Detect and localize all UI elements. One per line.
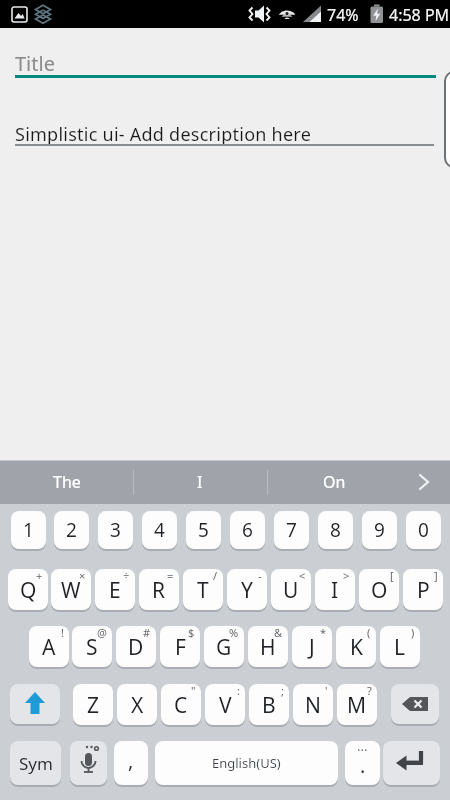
staticText: ? — [367, 683, 372, 698]
staticText: ] — [434, 568, 438, 583]
staticText: N — [305, 691, 321, 720]
staticText: Simplistic ui- Add description here — [15, 122, 312, 147]
staticText: " — [191, 683, 196, 698]
button[interactable]: U — [271, 569, 311, 610]
staticText: > — [343, 568, 350, 583]
button[interactable]: C — [161, 684, 201, 725]
button[interactable]: I — [315, 569, 355, 610]
staticText: = — [167, 568, 174, 583]
staticText: ÷ — [123, 568, 130, 583]
button[interactable] — [383, 741, 440, 785]
button[interactable]: K — [336, 626, 376, 667]
staticText: 7 — [286, 517, 297, 543]
button[interactable] — [70, 741, 107, 785]
button[interactable]: Sym — [10, 741, 61, 785]
button[interactable]: Q — [8, 569, 48, 610]
staticText: I — [331, 576, 339, 605]
staticText: 5 — [198, 517, 209, 543]
staticText: K — [350, 633, 363, 662]
staticText: W — [61, 576, 81, 605]
button[interactable]: 1 — [11, 511, 46, 549]
button[interactable]: ... — [345, 741, 380, 785]
button[interactable]: N — [293, 684, 333, 725]
staticText: $ — [188, 625, 195, 640]
button[interactable]: F — [160, 626, 200, 667]
button[interactable]: D — [116, 626, 156, 667]
staticText: H — [260, 633, 276, 662]
button[interactable]: A — [29, 626, 69, 667]
button[interactable]: English(US) — [155, 741, 338, 785]
button[interactable]: X — [117, 684, 157, 725]
staticText: 4:58 PM — [389, 4, 450, 26]
button[interactable] — [0, 36, 450, 80]
button[interactable]: W — [51, 569, 91, 610]
button[interactable]: 5 — [186, 511, 221, 549]
button[interactable]: P — [403, 569, 443, 610]
button[interactable]: I — [133, 460, 267, 504]
staticText: ) — [411, 625, 415, 640]
button[interactable]: 3 — [98, 511, 133, 549]
staticText: E — [109, 576, 121, 605]
staticText: 74% — [327, 4, 359, 26]
button[interactable]: S — [72, 626, 112, 667]
staticText: 3 — [110, 517, 121, 543]
staticText: C — [174, 691, 188, 720]
button[interactable]: J — [292, 626, 332, 667]
button[interactable]: 9 — [362, 511, 397, 549]
staticText: Sym — [19, 752, 53, 775]
staticText: / — [213, 568, 218, 583]
staticText: G — [216, 633, 232, 662]
button[interactable] — [10, 684, 60, 724]
button[interactable]: 6 — [230, 511, 265, 549]
staticText: - — [258, 568, 262, 583]
staticText: On — [323, 471, 346, 493]
staticText: T — [197, 576, 209, 605]
button[interactable]: B — [249, 684, 289, 725]
button[interactable]: O — [359, 569, 399, 610]
staticText: V — [219, 691, 232, 720]
staticText: 1 — [23, 517, 34, 543]
staticText: ' — [325, 683, 328, 698]
staticText: [ — [390, 568, 394, 583]
staticText: ; — [281, 683, 284, 698]
button[interactable] — [0, 110, 450, 148]
button[interactable]: 0 — [406, 511, 441, 549]
staticText: * — [320, 625, 327, 640]
button[interactable]: Z — [73, 684, 113, 725]
button[interactable]: 4 — [142, 511, 177, 549]
staticText: # — [143, 625, 151, 640]
button[interactable] — [401, 460, 450, 504]
button[interactable]: The — [0, 460, 133, 504]
button[interactable]: H — [248, 626, 288, 667]
staticText: Z — [87, 691, 100, 720]
button[interactable]: Y — [227, 569, 267, 610]
staticText: M — [347, 691, 367, 720]
staticText: D — [128, 633, 144, 662]
button[interactable]: V — [205, 684, 245, 725]
button[interactable]: G — [204, 626, 244, 667]
button[interactable]: 7 — [274, 511, 309, 549]
staticText: A — [42, 633, 56, 662]
staticText: < — [299, 568, 306, 583]
button[interactable]: T — [183, 569, 223, 610]
button[interactable]: E — [95, 569, 135, 610]
button[interactable]: R — [139, 569, 179, 610]
button[interactable]: On — [267, 460, 401, 504]
staticText: × — [79, 568, 86, 583]
staticText: , — [128, 747, 134, 774]
button[interactable]: 2 — [54, 511, 89, 549]
button[interactable]: M — [337, 684, 377, 725]
staticText: X — [131, 691, 144, 720]
button[interactable] — [444, 71, 450, 168]
staticText: @ — [97, 625, 107, 640]
button[interactable]: , — [114, 741, 148, 785]
staticText: ( — [367, 625, 371, 640]
staticText: 0 — [418, 517, 429, 543]
button[interactable] — [391, 684, 439, 724]
button[interactable]: L — [380, 626, 420, 667]
staticText: R — [152, 576, 166, 605]
staticText: S — [86, 633, 98, 662]
button[interactable]: 8 — [318, 511, 353, 549]
staticText: 9 — [374, 517, 385, 543]
staticText: % — [229, 625, 239, 640]
